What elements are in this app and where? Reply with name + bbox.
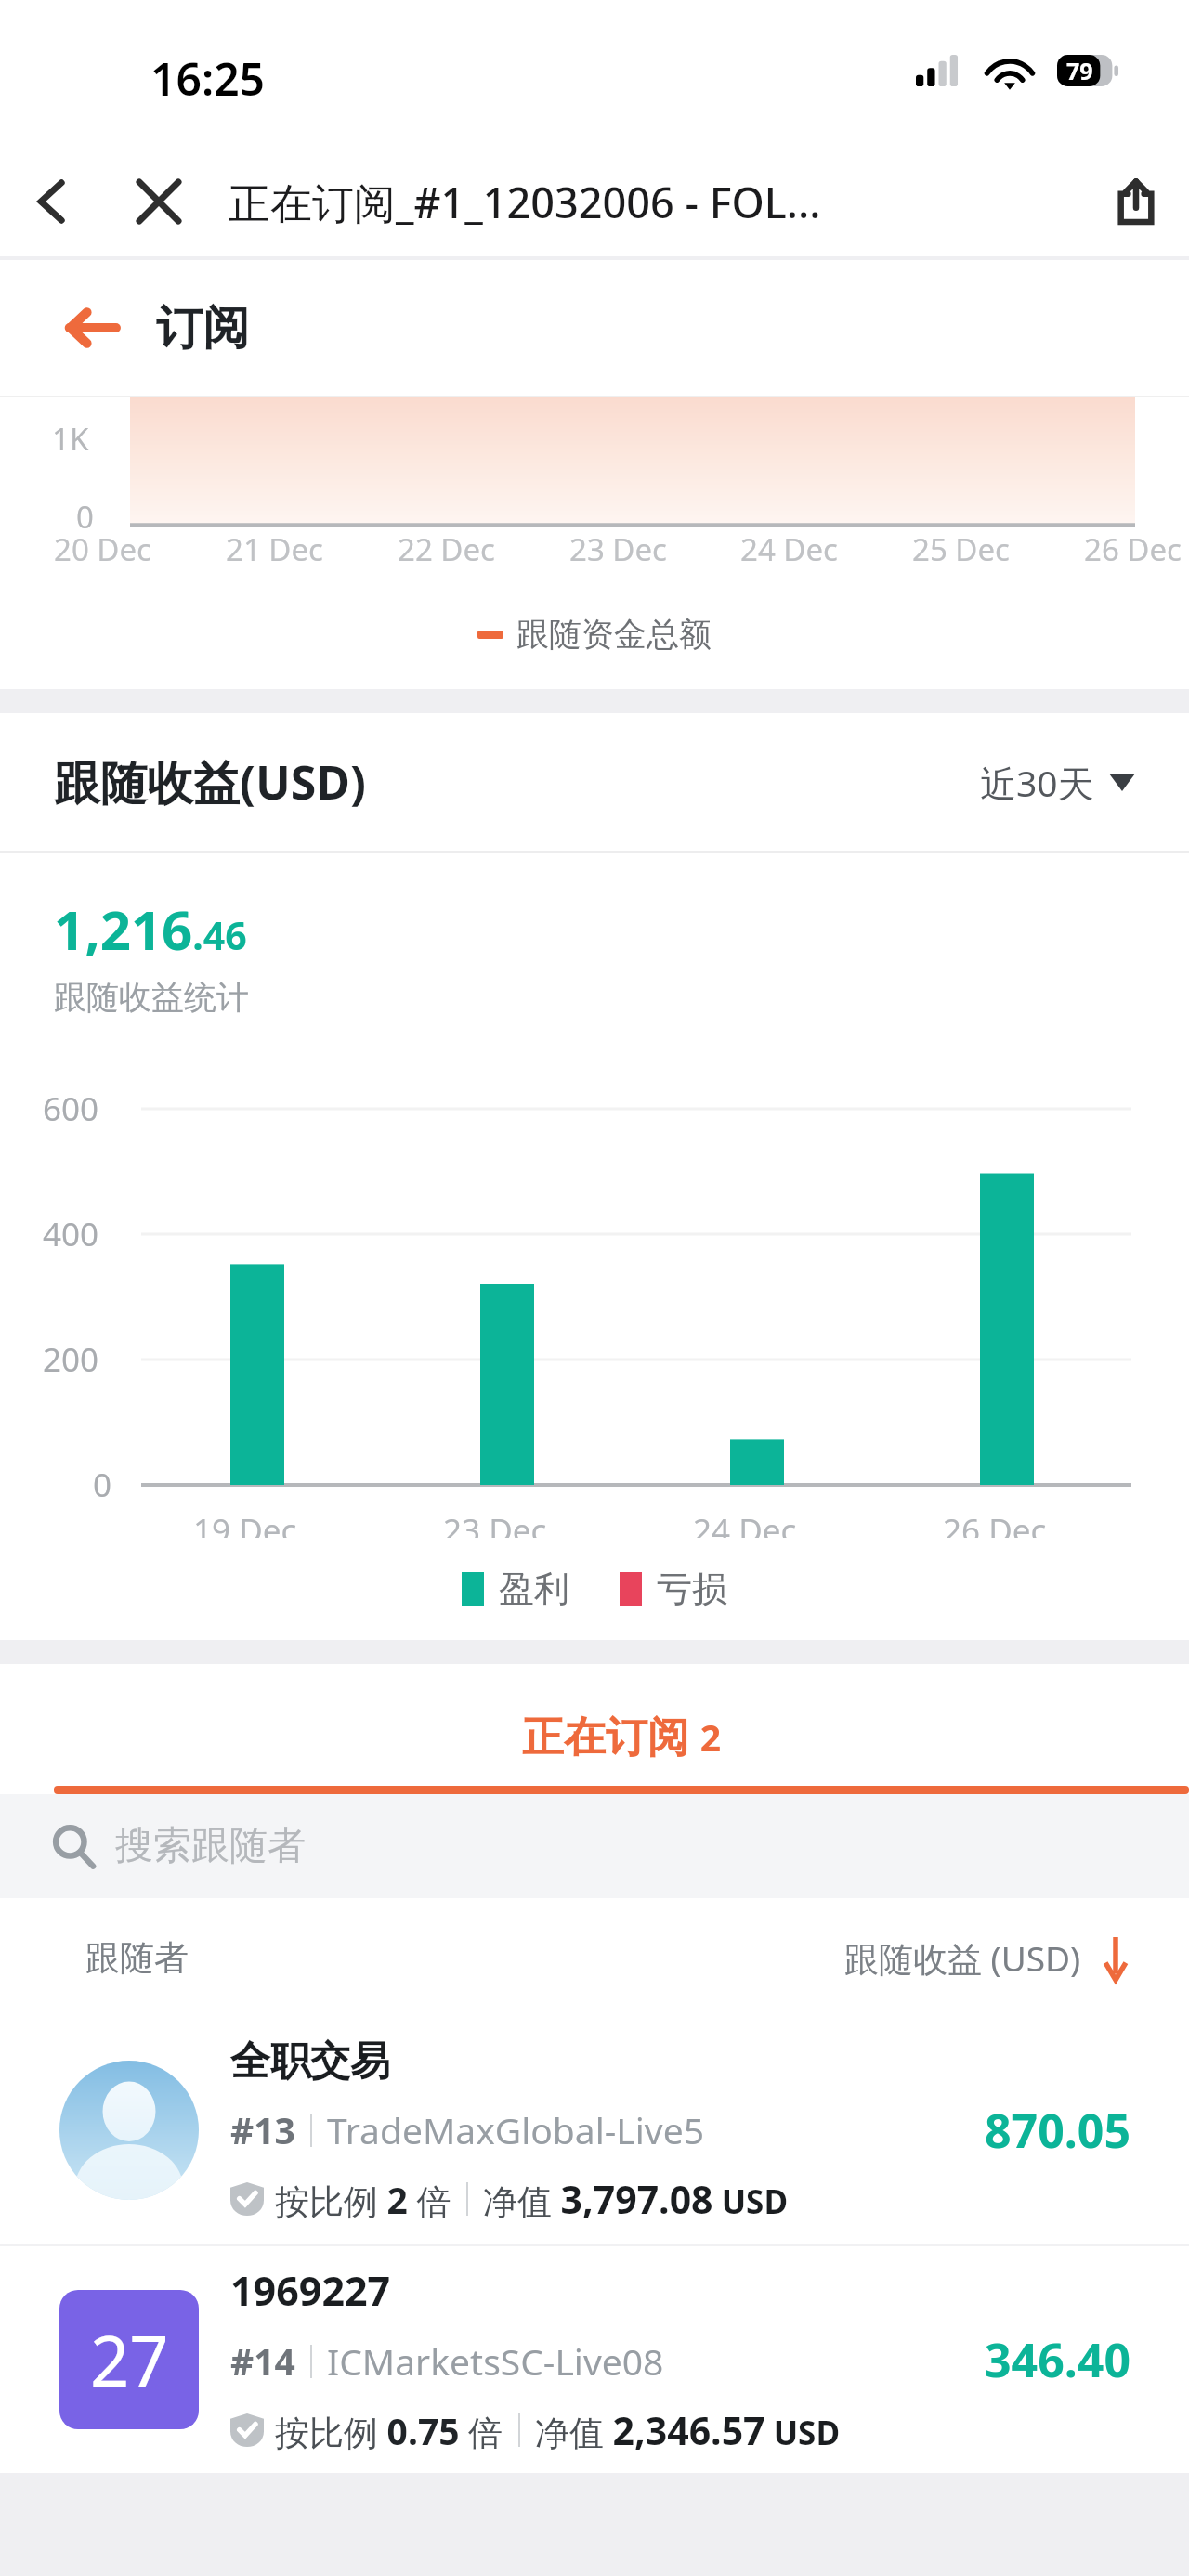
staticText: 400 — [43, 1212, 99, 1256]
staticText: 跟随者 — [85, 1936, 189, 1980]
button[interactable]: 跟随收益 (USD) — [844, 1934, 1128, 1982]
staticText: 23 Dec — [569, 528, 667, 570]
staticText: 600 — [43, 1086, 99, 1131]
staticText: 净值 2,346.57 USD — [535, 2404, 841, 2456]
staticText: 200 — [43, 1337, 99, 1382]
button[interactable]: 搜索跟随者 — [0, 1794, 1189, 1898]
other: Back — [67, 303, 117, 353]
staticText: 870.05 — [985, 2099, 1131, 2162]
staticText: 1969227 — [230, 2263, 391, 2318]
staticText: 按比例 2 倍 — [275, 2175, 451, 2224]
staticText: 正在订阅 2 — [522, 1707, 722, 1763]
staticText: 搜索跟随者 — [115, 1822, 306, 1870]
staticText: 跟随收益(USD) — [54, 750, 366, 813]
staticText: 正在订阅_#1_12032006 - FOL... — [229, 174, 821, 230]
staticText: ICMarketsSC-Live08 — [327, 2336, 664, 2386]
button[interactable]: Back — [0, 260, 1189, 396]
staticText: 亏损 — [657, 1567, 727, 1611]
staticText: 79 — [1066, 55, 1093, 86]
staticText: 22 Dec — [398, 528, 495, 570]
other: Sort descending — [1104, 1937, 1128, 1980]
staticText: 0 — [76, 496, 94, 538]
staticText: 按比例 0.75 倍 — [275, 2406, 503, 2455]
staticText: #13 — [230, 2105, 295, 2154]
button[interactable]: 正在订阅 2 — [54, 1707, 1189, 1794]
staticText: 24 Dec — [740, 528, 838, 570]
staticText: 27 — [90, 2313, 169, 2407]
staticText: 1K — [52, 418, 89, 460]
staticText: 近30天 — [980, 758, 1094, 807]
staticText: 21 Dec — [226, 528, 323, 570]
staticText: 跟随收益 (USD) — [844, 1934, 1081, 1982]
button[interactable]: 全职交易 — [0, 2017, 1189, 2244]
staticText: 26 Dec — [1084, 528, 1182, 570]
staticText: TradeMaxGlobal-Live5 — [327, 2105, 704, 2154]
staticText: 25 Dec — [912, 528, 1010, 570]
button[interactable]: 近30天 — [980, 758, 1135, 807]
staticText: 订阅 — [156, 299, 249, 358]
staticText: 1,216.46 — [54, 892, 247, 966]
staticText: 26 Dec — [943, 1508, 1047, 1538]
staticText: #14 — [230, 2336, 295, 2386]
staticText: 346.40 — [985, 2328, 1131, 2391]
staticText: 16:25 — [150, 48, 266, 109]
staticText: 19 Dec — [193, 1508, 297, 1538]
button[interactable]: 27 — [0, 2246, 1189, 2473]
staticText: 全职交易 — [230, 2036, 390, 2087]
staticText: 跟随资金总额 — [516, 614, 712, 655]
button[interactable]: Back — [0, 149, 106, 254]
staticText: 跟随收益统计 — [54, 977, 249, 1018]
staticText: 盈利 — [499, 1567, 569, 1611]
staticText: 0 — [93, 1463, 112, 1507]
staticText: 24 Dec — [693, 1508, 797, 1538]
button[interactable]: Close — [106, 149, 212, 254]
staticText: 23 Dec — [443, 1508, 547, 1538]
button[interactable]: Share — [1083, 149, 1189, 254]
staticText: 净值 3,797.08 USD — [483, 2173, 789, 2225]
staticText: 20 Dec — [54, 528, 151, 570]
